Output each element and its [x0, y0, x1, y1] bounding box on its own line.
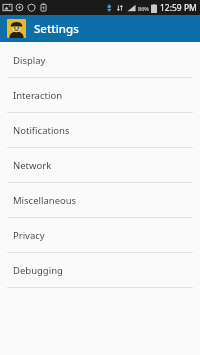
- staticText: 12:59 PM: [160, 2, 197, 14]
- button[interactable]: Privacy: [0, 218, 200, 252]
- staticText: 86%: [138, 5, 149, 12]
- staticText: Display: [13, 54, 46, 67]
- button[interactable]: Network: [0, 148, 200, 182]
- button[interactable]: Display: [0, 43, 200, 77]
- staticText: Interaction: [13, 89, 63, 102]
- button[interactable]: Debugging: [0, 253, 200, 287]
- staticText: Notifications: [13, 124, 70, 137]
- other: App icon: [7, 19, 26, 38]
- staticText: Privacy: [13, 229, 45, 242]
- staticText: Network: [13, 159, 52, 172]
- button[interactable]: Miscellaneous: [0, 183, 200, 217]
- staticText: Miscellaneous: [13, 194, 77, 207]
- staticText: Debugging: [13, 264, 63, 277]
- button[interactable]: Interaction: [0, 78, 200, 112]
- button[interactable]: Notifications: [0, 113, 200, 147]
- staticText: Settings: [34, 21, 79, 37]
